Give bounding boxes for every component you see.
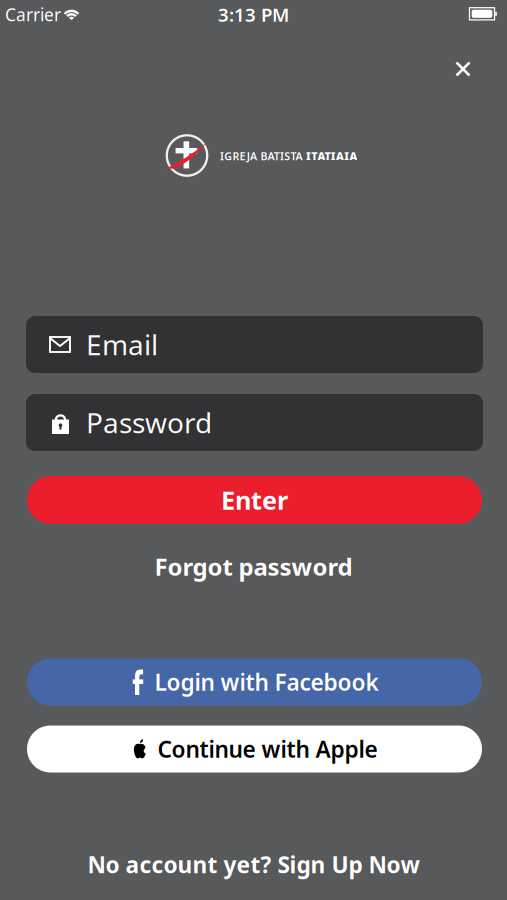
staticText: Email — [86, 326, 158, 363]
button[interactable]: Login with Facebook — [27, 658, 482, 705]
button[interactable]: Forgot password — [154, 551, 352, 582]
staticText: 3:13 PM — [218, 2, 289, 27]
staticText: Continue with Apple — [157, 734, 377, 764]
staticText: No account yet? Sign Up Now — [87, 849, 419, 879]
staticText: Enter — [221, 483, 288, 517]
staticText: Forgot password — [154, 551, 352, 582]
button[interactable]: Email — [26, 316, 483, 373]
staticText: Carrier — [5, 3, 61, 26]
staticText: IGREJA BATISTA ITATIAIA — [220, 149, 357, 163]
staticText: Password — [86, 404, 212, 441]
button[interactable]: Password — [26, 394, 483, 451]
button[interactable]: No account yet? Sign Up Now — [87, 849, 419, 879]
button[interactable]: Enter — [27, 476, 482, 524]
button[interactable]: Close — [446, 52, 479, 85]
button[interactable]: Continue with Apple — [27, 725, 482, 772]
staticText: Login with Facebook — [154, 667, 378, 697]
